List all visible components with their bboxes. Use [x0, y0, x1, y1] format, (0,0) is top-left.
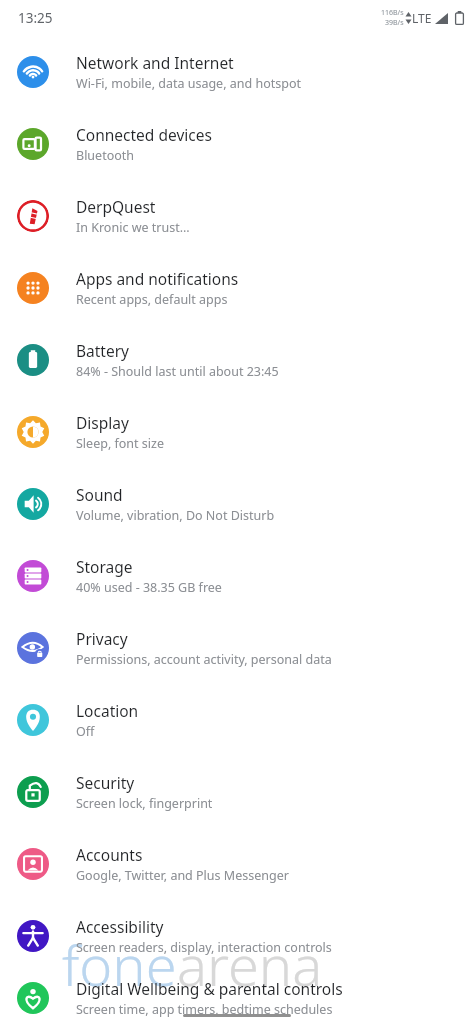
staticText: Network and Internet	[76, 52, 234, 73]
staticText: In Kronic we trust...	[76, 219, 190, 236]
staticText: 39B/s	[385, 18, 404, 28]
staticText: Off	[76, 723, 95, 740]
staticText: Screen time, app timers, bedtime schedul…	[76, 1001, 333, 1018]
button[interactable]: Accounts	[0, 828, 473, 900]
staticText: arena	[177, 926, 323, 1002]
other: Apps and notifications	[17, 272, 49, 304]
other: Accessibility	[17, 920, 49, 952]
staticText: Bluetooth	[76, 147, 135, 164]
staticText: Accessibility	[76, 916, 164, 937]
button[interactable]: Network and Internet	[0, 36, 473, 108]
button[interactable]: Storage	[0, 540, 473, 612]
staticText: Google, Twitter, and Plus Messenger	[76, 867, 289, 884]
staticText: fone	[62, 926, 177, 1002]
staticText: Sleep, font size	[76, 435, 164, 452]
button[interactable]: Apps and notifications	[0, 252, 473, 324]
other: Storage	[17, 560, 49, 592]
staticText: Battery	[76, 340, 130, 361]
other: Battery	[17, 344, 49, 376]
staticText: Sound	[76, 484, 123, 505]
staticText: DerpQuest	[76, 196, 156, 217]
staticText: 84% - Should last until about 23:45	[76, 363, 279, 380]
other: Accounts	[17, 848, 49, 880]
button[interactable]: Privacy	[0, 612, 473, 684]
button[interactable]: Display	[0, 396, 473, 468]
other: Location	[17, 704, 49, 736]
other: Connected devices	[17, 128, 49, 160]
other: Privacy	[17, 632, 49, 664]
staticText: LTE	[412, 10, 432, 26]
staticText: Permissions, account activity, personal …	[76, 651, 332, 668]
staticText: Location	[76, 700, 139, 721]
staticText: 116B/s	[381, 8, 404, 18]
staticText: 40% used - 38.35 GB free	[76, 579, 222, 596]
button[interactable]: Accessibility	[0, 900, 473, 972]
staticText: Display	[76, 412, 129, 433]
other: Digital Wellbeing & parental controls	[17, 982, 49, 1014]
staticText: Accounts	[76, 844, 143, 865]
staticText: 13:25	[18, 9, 53, 27]
other: DerpQuest	[17, 200, 49, 232]
staticText: Recent apps, default apps	[76, 291, 228, 308]
staticText: Privacy	[76, 628, 128, 649]
button[interactable]: Security	[0, 756, 473, 828]
staticText: Screen lock, fingerprint	[76, 795, 213, 812]
button[interactable]: Digital Wellbeing & parental controls	[0, 972, 473, 1024]
button[interactable]: Connected devices	[0, 108, 473, 180]
other: Display	[17, 416, 49, 448]
button[interactable]: DerpQuest	[0, 180, 473, 252]
staticText: Screen readers, display, interaction con…	[76, 939, 332, 956]
button[interactable]: Battery	[0, 324, 473, 396]
staticText: Digital Wellbeing & parental controls	[76, 978, 343, 999]
staticText: Wi-Fi, mobile, data usage, and hotspot	[76, 75, 301, 92]
other: Network and Internet	[17, 56, 49, 88]
staticText: Storage	[76, 556, 133, 577]
staticText: Connected devices	[76, 124, 212, 145]
other: Security	[17, 776, 49, 808]
staticText: Volume, vibration, Do Not Disturb	[76, 507, 275, 524]
button[interactable]: Sound	[0, 468, 473, 540]
staticText: Apps and notifications	[76, 268, 239, 289]
other: Sound	[17, 488, 49, 520]
staticText: Security	[76, 772, 135, 793]
button[interactable]: Location	[0, 684, 473, 756]
